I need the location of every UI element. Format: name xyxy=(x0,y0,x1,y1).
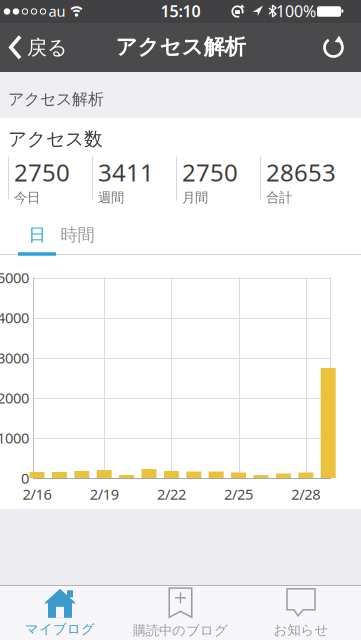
staticText: 購読中のブログ xyxy=(133,622,228,639)
staticText: 100% xyxy=(276,0,316,22)
button[interactable]: マイブログ xyxy=(0,586,120,640)
staticText: 月間 xyxy=(182,189,208,206)
staticText: 時間 xyxy=(60,224,94,246)
staticText: 2/25 xyxy=(224,484,253,504)
button[interactable]: 日 xyxy=(18,220,56,250)
button[interactable]: 更新 xyxy=(314,23,354,72)
button[interactable]: 時間 xyxy=(55,220,99,250)
staticText: マイブログ xyxy=(25,621,95,637)
button[interactable]: お知らせ xyxy=(241,586,361,640)
staticText: au xyxy=(48,1,65,21)
staticText: 3411 xyxy=(98,156,154,188)
staticText: 今日 xyxy=(14,189,40,206)
staticText: 週間 xyxy=(98,189,124,206)
staticText: 2000 xyxy=(0,388,29,408)
staticText: アクセス数 xyxy=(8,127,103,150)
staticText: 28653 xyxy=(266,156,336,188)
staticText: 1000 xyxy=(0,428,29,448)
staticText: 5000 xyxy=(0,268,29,287)
staticText: 日 xyxy=(28,224,45,246)
staticText: 4000 xyxy=(0,308,29,327)
staticText: 2/22 xyxy=(157,484,186,504)
staticText: 2/16 xyxy=(22,484,51,504)
staticText: 2750 xyxy=(182,156,238,188)
staticText: 2750 xyxy=(14,156,70,188)
staticText: 合計 xyxy=(266,189,292,206)
staticText: 戻る xyxy=(27,35,67,60)
staticText: 3000 xyxy=(0,348,29,367)
staticText: アクセス解析 xyxy=(115,34,245,60)
staticText: お知らせ xyxy=(273,622,328,638)
button[interactable]: 購読中のブログ xyxy=(120,586,240,640)
staticText: アクセス解析 xyxy=(8,89,104,109)
staticText: 15:10 xyxy=(160,0,200,22)
staticText: 2/28 xyxy=(291,484,320,504)
staticText: 0 xyxy=(21,468,29,488)
button[interactable]: 戻る xyxy=(1,23,67,72)
staticText: 2/19 xyxy=(90,484,119,504)
